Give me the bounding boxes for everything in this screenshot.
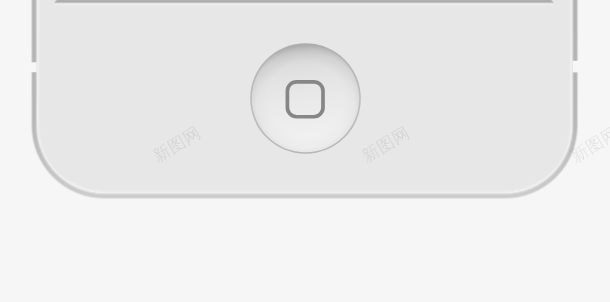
staticText: 新图网 [567,122,610,167]
staticText: 新图网 [149,122,205,167]
button[interactable]: Home button [250,43,361,154]
staticText: 新图网 [358,122,414,167]
